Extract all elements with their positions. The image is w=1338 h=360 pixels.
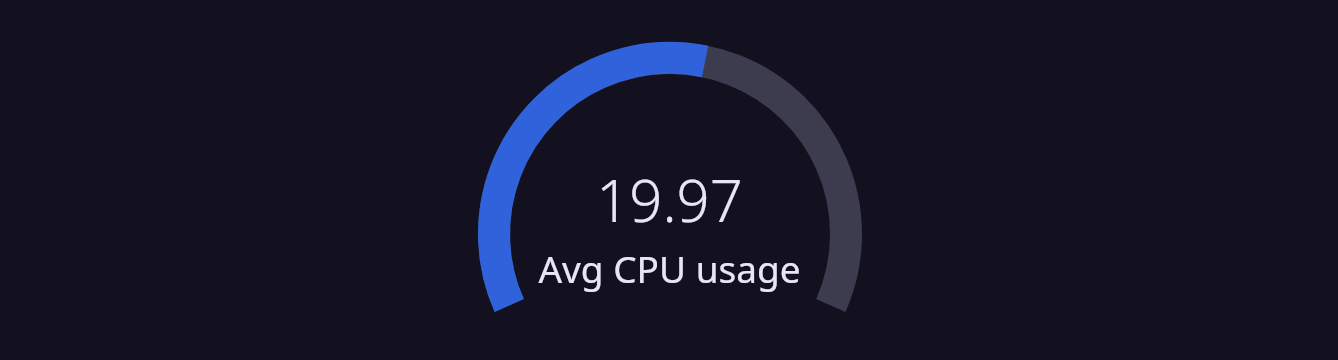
staticText: 19.97: [596, 160, 743, 239]
button[interactable]: Average CPU usage gauge, 19.97 percent: [0, 0, 1338, 360]
staticText: Avg CPU usage: [538, 243, 801, 293]
